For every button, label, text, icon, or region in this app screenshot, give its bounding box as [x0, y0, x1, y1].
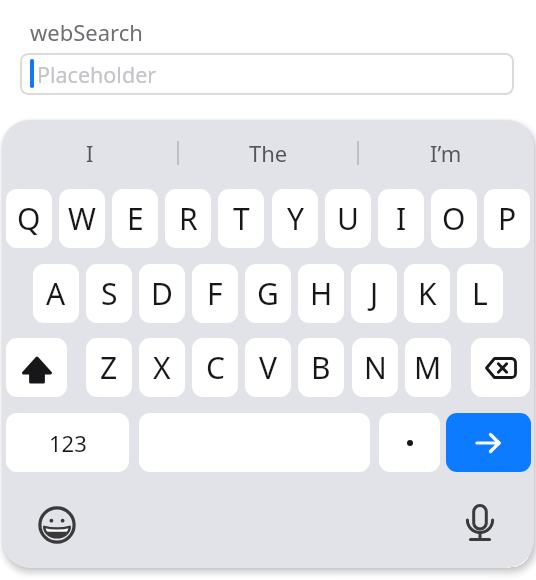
button[interactable] [446, 413, 531, 472]
button[interactable]: J [351, 264, 397, 323]
staticText: G [257, 273, 279, 314]
button[interactable]: M [405, 338, 451, 397]
button[interactable]: Z [86, 338, 132, 397]
staticText: W [68, 198, 96, 239]
button[interactable]: P [484, 189, 530, 248]
staticText: N [364, 347, 387, 388]
button[interactable]: W [59, 189, 105, 248]
button[interactable]: U [325, 189, 371, 248]
button[interactable]: 123 [6, 413, 129, 472]
staticText: Q [17, 198, 41, 239]
button[interactable]: Q [6, 189, 52, 248]
staticText: L [472, 273, 488, 314]
button[interactable]: I [2, 130, 178, 176]
button[interactable]: A [33, 264, 79, 323]
staticText: E [127, 198, 144, 239]
button[interactable]: I [378, 189, 424, 248]
button[interactable]: V [245, 338, 291, 397]
button[interactable]: F [192, 264, 238, 323]
staticText: I’m [430, 138, 462, 168]
staticText: P [498, 198, 517, 239]
staticText: V [259, 347, 277, 388]
button[interactable]: Placeholder [20, 53, 514, 95]
staticText: F [207, 273, 223, 314]
staticText: O [442, 198, 466, 239]
button[interactable]: R [165, 189, 211, 248]
button[interactable]: K [404, 264, 450, 323]
button[interactable]: I’m [358, 130, 534, 176]
button[interactable] [471, 338, 530, 397]
staticText: H [310, 273, 333, 314]
button[interactable]: C [192, 338, 238, 397]
button[interactable]: S [86, 264, 132, 323]
staticText: C [206, 347, 225, 388]
staticText: T [233, 198, 250, 239]
button[interactable] [379, 413, 440, 472]
button[interactable]: The [179, 130, 357, 176]
staticText: X [153, 347, 171, 388]
staticText: S [101, 273, 118, 314]
button[interactable]: Y [272, 189, 318, 248]
staticText: Placeholder [37, 60, 157, 89]
staticText: J [370, 273, 379, 314]
staticText: I [86, 138, 94, 168]
button[interactable]: B [298, 338, 344, 397]
button[interactable]: E [112, 189, 158, 248]
staticText: The [249, 138, 288, 168]
button[interactable]: X [139, 338, 185, 397]
staticText: U [337, 198, 359, 239]
staticText: M [414, 347, 442, 388]
button[interactable] [6, 338, 67, 397]
staticText: webSearch [30, 17, 143, 47]
staticText: B [311, 347, 331, 388]
button[interactable]: L [457, 264, 503, 323]
staticText: Y [287, 198, 304, 239]
button[interactable]: H [298, 264, 344, 323]
button[interactable] [457, 502, 503, 548]
staticText: R [179, 198, 198, 239]
button[interactable]: T [218, 189, 264, 248]
staticText: A [46, 273, 66, 314]
staticText: 123 [49, 428, 87, 458]
staticText: I [396, 198, 407, 239]
button[interactable] [34, 502, 80, 548]
button[interactable]: D [139, 264, 185, 323]
staticText: Z [100, 347, 118, 388]
staticText: K [418, 273, 437, 314]
button[interactable]: N [352, 338, 398, 397]
staticText: D [151, 273, 173, 314]
button[interactable]: G [245, 264, 291, 323]
button[interactable]: O [431, 189, 477, 248]
